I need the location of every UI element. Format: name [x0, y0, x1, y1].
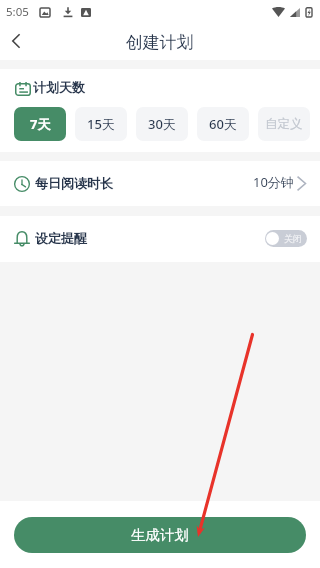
- staticText: 关闭: [284, 233, 302, 244]
- staticText: 10分钟: [253, 173, 294, 191]
- staticText: 生成计划: [131, 526, 189, 544]
- button[interactable]: 15天: [75, 107, 127, 141]
- button[interactable]: Toggle reminder: [265, 230, 307, 247]
- button[interactable]: 生成计划: [14, 517, 306, 553]
- staticText: 60天: [209, 115, 237, 133]
- staticText: 创建计划: [126, 32, 194, 53]
- button[interactable]: 自定义: [258, 107, 310, 141]
- staticText: 自定义: [265, 116, 303, 132]
- button[interactable]: 设定提醒: [0, 216, 320, 262]
- staticText: 15天: [87, 115, 115, 133]
- staticText: 7天: [30, 115, 51, 133]
- button[interactable]: Back: [0, 24, 33, 60]
- staticText: 5:05: [6, 4, 29, 20]
- button[interactable]: 60天: [197, 107, 249, 141]
- button[interactable]: 30天: [136, 107, 188, 141]
- staticText: 每日阅读时长: [35, 175, 113, 191]
- button[interactable]: 7天: [14, 107, 66, 141]
- button[interactable]: 每日阅读时长: [0, 161, 320, 206]
- staticText: 计划天数: [33, 79, 85, 95]
- staticText: 设定提醒: [35, 230, 87, 246]
- staticText: 30天: [148, 115, 176, 133]
